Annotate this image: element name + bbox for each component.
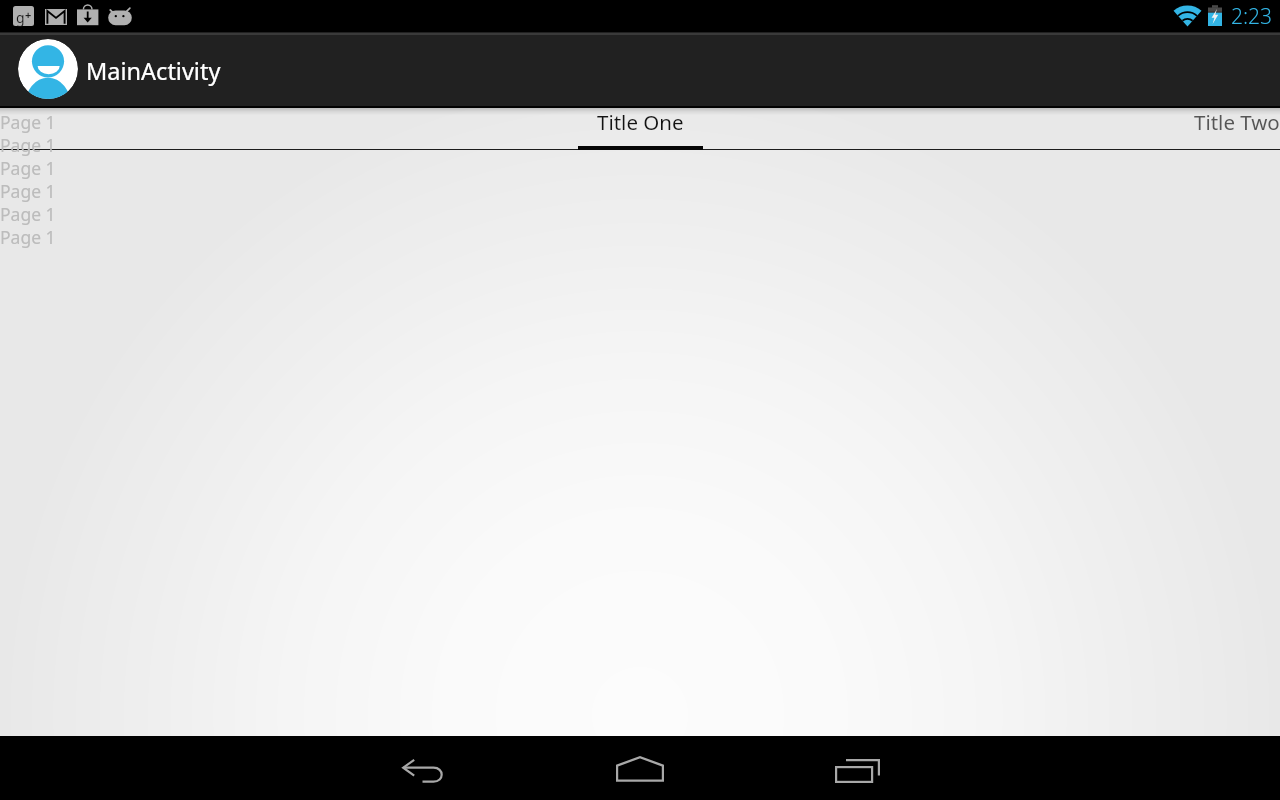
button[interactable]: Page 1 <box>0 179 60 202</box>
button[interactable]: Page 1 <box>0 156 60 179</box>
button[interactable]: Page 1 <box>0 133 60 156</box>
staticText: 2:23 <box>1231 2 1273 31</box>
staticText: Title Two <box>1194 108 1280 136</box>
button[interactable]: Title One <box>578 108 703 146</box>
staticText: Page 1 <box>0 179 56 202</box>
button[interactable]: Page 1 <box>0 202 60 225</box>
staticText: Page 1 <box>0 202 56 225</box>
staticText: Page 1 <box>0 110 56 133</box>
button[interactable]: Page 1 <box>0 225 60 248</box>
button[interactable]: Page 1 <box>0 110 60 133</box>
button[interactable]: Account <box>18 39 78 99</box>
staticText: g <box>16 8 25 27</box>
staticText: Page 1 <box>0 133 56 156</box>
staticText: Page 1 <box>0 156 56 179</box>
staticText: Title One <box>597 108 684 136</box>
staticText: MainActivity <box>86 55 221 87</box>
staticText: Page 1 <box>0 225 56 248</box>
button[interactable]: Back <box>392 736 456 800</box>
button[interactable]: Title Two <box>1194 108 1280 146</box>
staticText: + <box>25 7 32 22</box>
button[interactable]: Recent apps <box>824 736 888 800</box>
button[interactable]: Home <box>608 736 672 800</box>
